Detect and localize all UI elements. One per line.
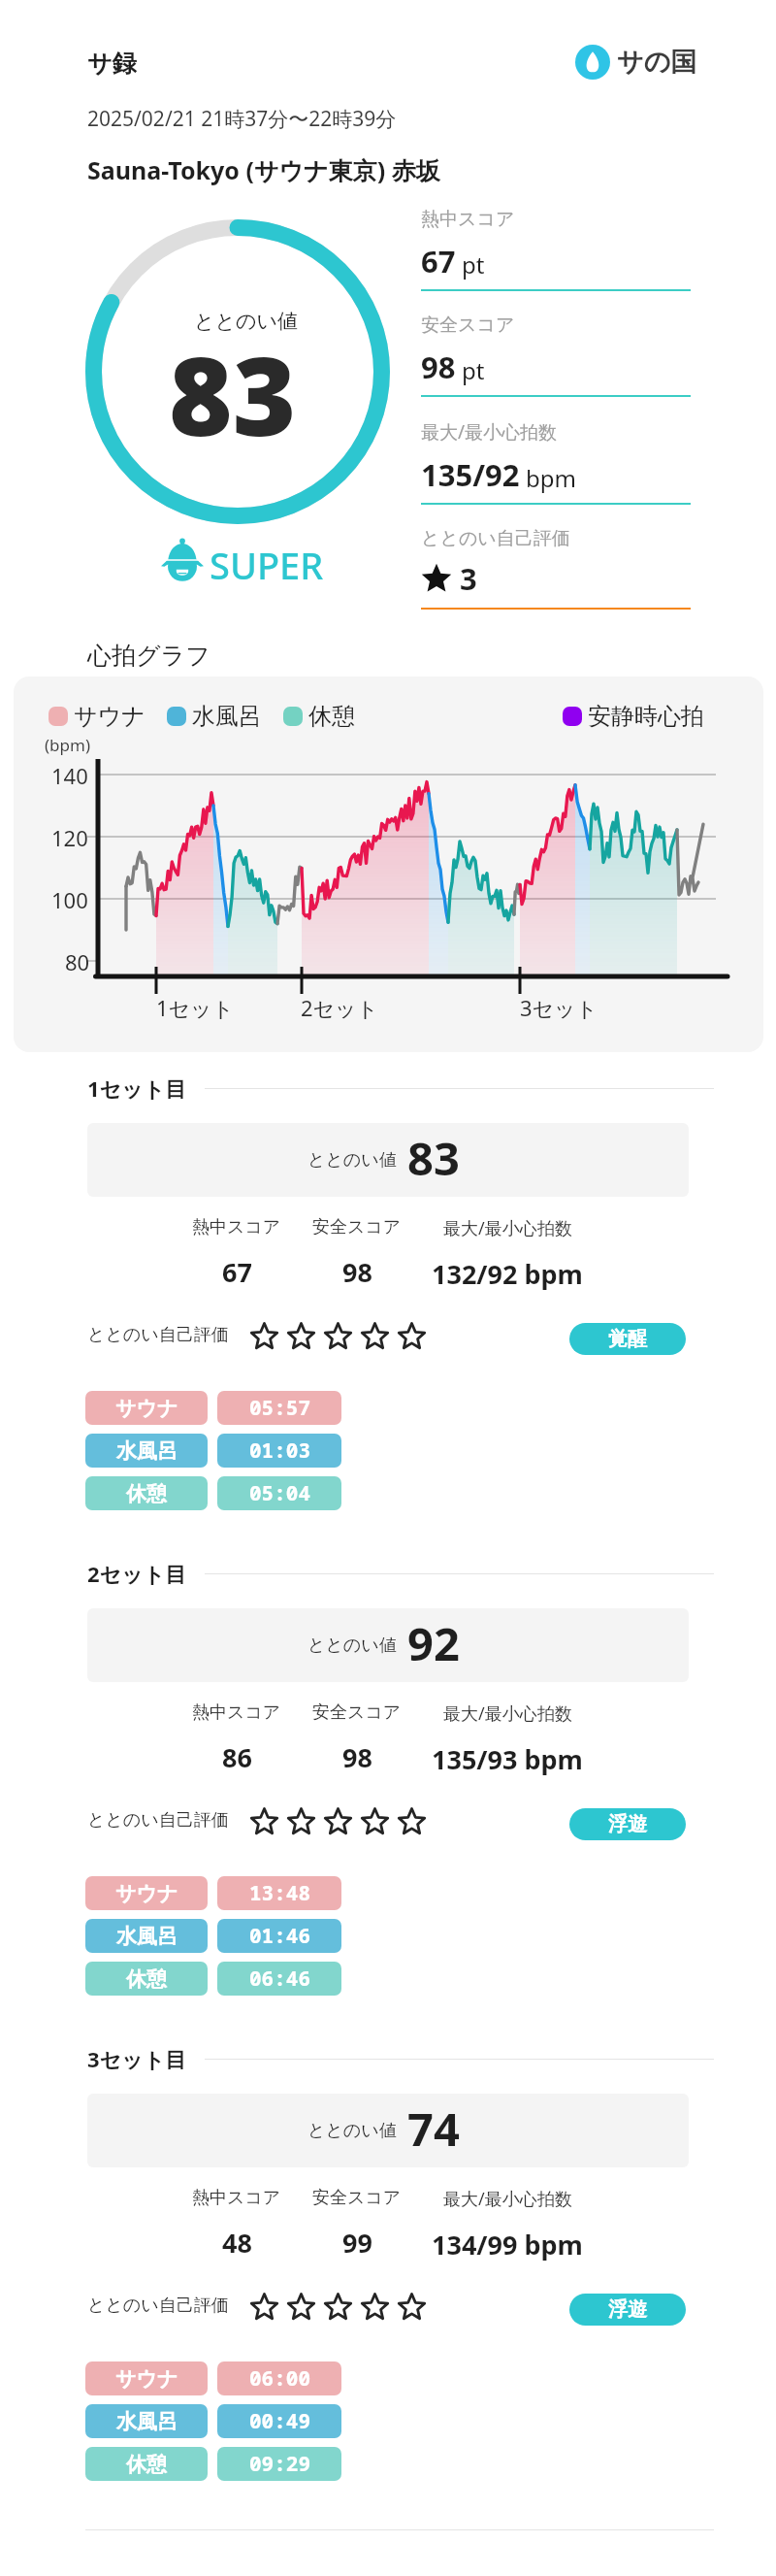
staticText: ととのい自己評価	[87, 1809, 229, 1832]
staticText: Sauna-Tokyo (サウナ東京) 赤坂	[87, 153, 440, 186]
staticText: 140	[51, 761, 88, 790]
staticText: 13:48	[249, 1879, 310, 1907]
staticText: サウナ	[115, 1396, 178, 1421]
staticText: 06:46	[249, 1965, 310, 1993]
button[interactable]: 浮遊	[569, 2294, 686, 2326]
staticText: 100	[51, 885, 88, 914]
staticText: 83	[169, 319, 297, 468]
staticText: 覚醒	[608, 1327, 647, 1351]
staticText: サウナ	[115, 2366, 178, 2392]
staticText: 3セット	[520, 993, 598, 1022]
staticText: (bpm)	[45, 734, 91, 756]
button[interactable]: 覚醒	[569, 1323, 686, 1355]
staticText: SUPER	[210, 540, 324, 590]
staticText: ととのい自己評価	[87, 1324, 229, 1346]
staticText: ととのい値	[307, 1149, 397, 1172]
staticText: 09:29	[249, 2450, 310, 2478]
staticText: 水風呂	[116, 1924, 178, 1949]
staticText: 熱中スコア	[192, 1701, 281, 1724]
staticText: 最大/最小心拍数	[421, 419, 558, 445]
staticText: 水風呂	[116, 1438, 178, 1464]
staticText: 1セット	[156, 993, 235, 1022]
staticText: 00:49	[249, 2407, 310, 2435]
staticText: 05:04	[249, 1479, 310, 1507]
staticText: 98	[421, 347, 456, 387]
staticText: 98	[342, 1739, 372, 1775]
button[interactable]: ととのい値	[87, 1608, 689, 1682]
staticText: 01:03	[249, 1437, 310, 1465]
staticText: 休憩	[126, 1966, 167, 1992]
staticText: ととのい自己評価	[87, 2295, 229, 2317]
staticText: 休憩	[308, 702, 355, 731]
staticText: 74	[407, 2097, 460, 2160]
staticText: 01:46	[249, 1922, 310, 1950]
staticText: 132/92 bpm	[432, 1256, 583, 1292]
staticText: 98	[342, 1254, 372, 1290]
staticText: サ録	[87, 49, 137, 79]
button[interactable]: ととのい値	[87, 2094, 689, 2167]
staticText: 休憩	[126, 2452, 167, 2477]
staticText: サウナ	[74, 702, 145, 731]
staticText: 67	[222, 1254, 252, 1290]
staticText: 2セット	[301, 993, 379, 1022]
staticText: 99	[342, 2225, 372, 2261]
staticText: ととのい自己評価	[421, 527, 570, 550]
staticText: 05:57	[249, 1394, 310, 1422]
staticText: 86	[222, 1739, 252, 1775]
staticText: 135/93 bpm	[432, 1741, 583, 1777]
staticText: 熱中スコア	[192, 2187, 281, 2209]
staticText: 水風呂	[192, 702, 262, 731]
staticText: ととのい値	[194, 309, 298, 334]
button[interactable]: サの国 logo	[575, 45, 697, 80]
staticText: 安全スコア	[421, 314, 515, 337]
staticText: bpm	[526, 462, 576, 494]
staticText: ととのい値	[307, 1635, 397, 1657]
staticText: サウナ	[115, 1881, 178, 1906]
staticText: 67	[421, 241, 456, 281]
staticText: 最大/最小心拍数	[443, 1701, 572, 1726]
staticText: 3セット目	[87, 2044, 187, 2073]
staticText: pt	[462, 248, 485, 281]
staticText: 1セット目	[87, 1073, 187, 1103]
staticText: 最大/最小心拍数	[443, 1216, 572, 1240]
staticText: 134/99 bpm	[432, 2227, 583, 2262]
staticText: pt	[462, 354, 485, 386]
staticText: 休憩	[126, 1481, 167, 1506]
staticText: 2025/02/21 21時37分〜22時39分	[87, 105, 397, 133]
staticText: 浮遊	[608, 1812, 647, 1836]
staticText: 135/92	[421, 454, 520, 495]
staticText: サの国	[617, 46, 697, 79]
staticText: 浮遊	[608, 2297, 647, 2322]
staticText: 48	[222, 2225, 252, 2261]
staticText: 3	[460, 558, 477, 599]
staticText: 安全スコア	[312, 1701, 402, 1724]
staticText: 最大/最小心拍数	[443, 2187, 572, 2211]
staticText: ととのい値	[307, 2120, 397, 2142]
staticText: 2セット目	[87, 1559, 187, 1588]
staticText: 熱中スコア	[421, 208, 515, 231]
staticText: 83	[407, 1127, 460, 1189]
staticText: 安静時心拍	[588, 702, 704, 731]
staticText: 水風呂	[116, 2409, 178, 2434]
staticText: 120	[51, 823, 88, 852]
button[interactable]: 浮遊	[569, 1808, 686, 1840]
button[interactable]: ととのい値	[87, 1123, 689, 1197]
staticText: 熱中スコア	[192, 1216, 281, 1238]
staticText: 80	[65, 947, 90, 976]
staticText: 安全スコア	[312, 1216, 402, 1238]
staticText: 心拍グラフ	[87, 641, 210, 671]
staticText: 06:00	[249, 2364, 310, 2393]
staticText: 安全スコア	[312, 2187, 402, 2209]
staticText: 92	[407, 1612, 460, 1674]
